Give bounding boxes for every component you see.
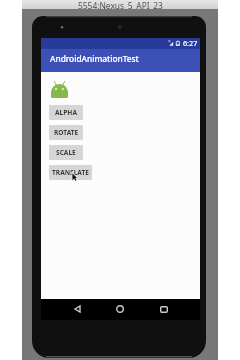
staticText: SCALE <box>56 148 76 157</box>
staticText: AndroidAnimationTest <box>50 53 139 64</box>
button[interactable]: Recent apps <box>155 300 173 318</box>
staticText: TRANSLATE <box>52 168 89 177</box>
staticText: 6:27 <box>183 38 198 48</box>
button[interactable]: ALPHA <box>49 105 83 120</box>
staticText: ALPHA <box>55 108 77 117</box>
staticText: ROTATE <box>54 128 79 137</box>
button[interactable]: Home <box>111 300 129 318</box>
button[interactable]: Back <box>68 300 86 318</box>
staticText: 5554:Nexus_5_API_23 <box>78 0 163 9</box>
button[interactable]: TRANSLATE <box>49 165 92 180</box>
button[interactable]: SCALE <box>49 145 83 160</box>
button[interactable]: ROTATE <box>49 125 83 140</box>
